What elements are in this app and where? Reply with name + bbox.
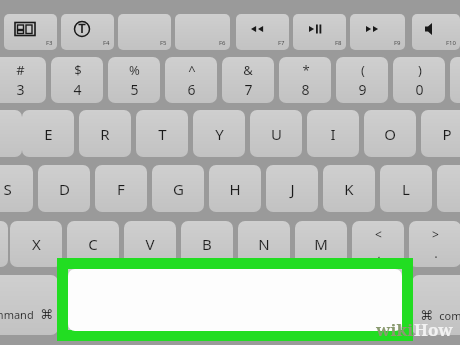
staticText: *	[302, 61, 310, 79]
button[interactable]: (	[336, 57, 388, 103]
button[interactable]: Command	[0, 275, 58, 335]
staticText: O	[384, 124, 396, 144]
staticText: &	[243, 61, 253, 79]
button[interactable]: E	[22, 110, 74, 157]
button[interactable]: U	[250, 110, 302, 157]
button[interactable]: #	[0, 57, 46, 103]
button[interactable]: F4	[61, 14, 114, 50]
button[interactable]	[0, 221, 8, 267]
button[interactable]: B	[181, 221, 233, 267]
button[interactable]: V	[124, 221, 176, 267]
button[interactable]: F	[95, 165, 147, 212]
staticText: F	[117, 179, 125, 199]
staticText: H	[229, 179, 241, 199]
button[interactable]: F7	[236, 14, 289, 50]
staticText: mmand	[0, 307, 34, 322]
staticText: T	[158, 124, 167, 144]
staticText: )	[418, 61, 422, 79]
staticText: P	[442, 124, 452, 144]
staticText: 0	[415, 80, 424, 99]
button[interactable]: F6	[175, 14, 230, 50]
button[interactable]: S	[0, 165, 33, 212]
button[interactable]: ^	[165, 57, 217, 103]
staticText: ^	[188, 61, 196, 79]
staticText: wiki	[376, 318, 414, 341]
button[interactable]: R	[79, 110, 131, 157]
button[interactable]	[0, 110, 22, 157]
staticText: <	[375, 226, 382, 242]
staticText: F5	[160, 39, 167, 47]
button[interactable]: C	[67, 221, 119, 267]
staticText: 5	[130, 80, 139, 99]
staticText: ⌘	[420, 308, 433, 323]
staticText: .	[434, 244, 438, 262]
button[interactable]: *	[279, 57, 331, 103]
button[interactable]: %	[108, 57, 160, 103]
staticText: F9	[394, 39, 401, 47]
staticText: 4	[73, 80, 82, 99]
button[interactable]: Y	[193, 110, 245, 157]
staticText: F6	[219, 39, 226, 47]
staticText: 3	[16, 80, 25, 99]
button[interactable]	[437, 165, 460, 212]
staticText: (	[361, 61, 365, 79]
staticText: 7	[244, 80, 253, 99]
button[interactable]: D	[38, 165, 90, 212]
button[interactable]: F10	[412, 14, 460, 50]
staticText: ⌘	[40, 307, 53, 322]
staticText: Y	[215, 124, 224, 144]
staticText: $	[74, 61, 82, 79]
staticText: I	[330, 124, 336, 144]
button[interactable]: &	[222, 57, 274, 103]
button[interactable]: J	[266, 165, 318, 212]
button[interactable]: Space bar	[68, 269, 402, 331]
button[interactable]: O	[364, 110, 416, 157]
staticText: E	[44, 124, 53, 144]
staticText: R	[100, 124, 110, 144]
button[interactable]: L	[380, 165, 432, 212]
staticText: J	[290, 179, 295, 199]
button[interactable]: H	[209, 165, 261, 212]
staticText: G	[173, 179, 184, 199]
button[interactable]: F8	[293, 14, 346, 50]
staticText: U	[271, 124, 282, 144]
button[interactable]: F5	[118, 14, 171, 50]
button[interactable]: <	[352, 221, 404, 267]
button[interactable]: N	[238, 221, 290, 267]
staticText: F7	[278, 39, 285, 47]
staticText: comm	[439, 308, 460, 323]
staticText: K	[344, 179, 354, 199]
button[interactable]: G	[152, 165, 204, 212]
button[interactable]: T	[136, 110, 188, 157]
staticText: S	[3, 179, 12, 199]
button[interactable]: >	[409, 221, 460, 267]
button[interactable]: Command right	[412, 275, 460, 335]
button[interactable]: K	[323, 165, 375, 212]
staticText: 8	[301, 80, 310, 99]
staticText: 6	[187, 80, 196, 99]
staticText: N	[258, 234, 270, 254]
staticText: >	[432, 226, 439, 242]
staticText: B	[202, 234, 212, 254]
staticText: #	[16, 61, 25, 79]
staticText: M	[314, 234, 328, 254]
staticText: F3	[46, 39, 53, 47]
staticText: %	[129, 61, 140, 79]
button[interactable]	[450, 57, 460, 103]
button[interactable]: I	[307, 110, 359, 157]
button[interactable]: $	[51, 57, 103, 103]
staticText: D	[59, 179, 70, 199]
staticText: F10	[446, 39, 456, 47]
button[interactable]: X	[10, 221, 62, 267]
staticText: V	[145, 234, 155, 254]
staticText: ,	[377, 244, 381, 262]
button[interactable]: F9	[350, 14, 405, 50]
button[interactable]: M	[295, 221, 347, 267]
staticText: C	[88, 234, 98, 254]
staticText: How	[414, 318, 453, 341]
staticText: X	[32, 234, 41, 254]
button[interactable]: )	[393, 57, 445, 103]
button[interactable]: F3	[4, 14, 57, 50]
button[interactable]: P	[421, 110, 460, 157]
staticText: F8	[335, 39, 342, 47]
